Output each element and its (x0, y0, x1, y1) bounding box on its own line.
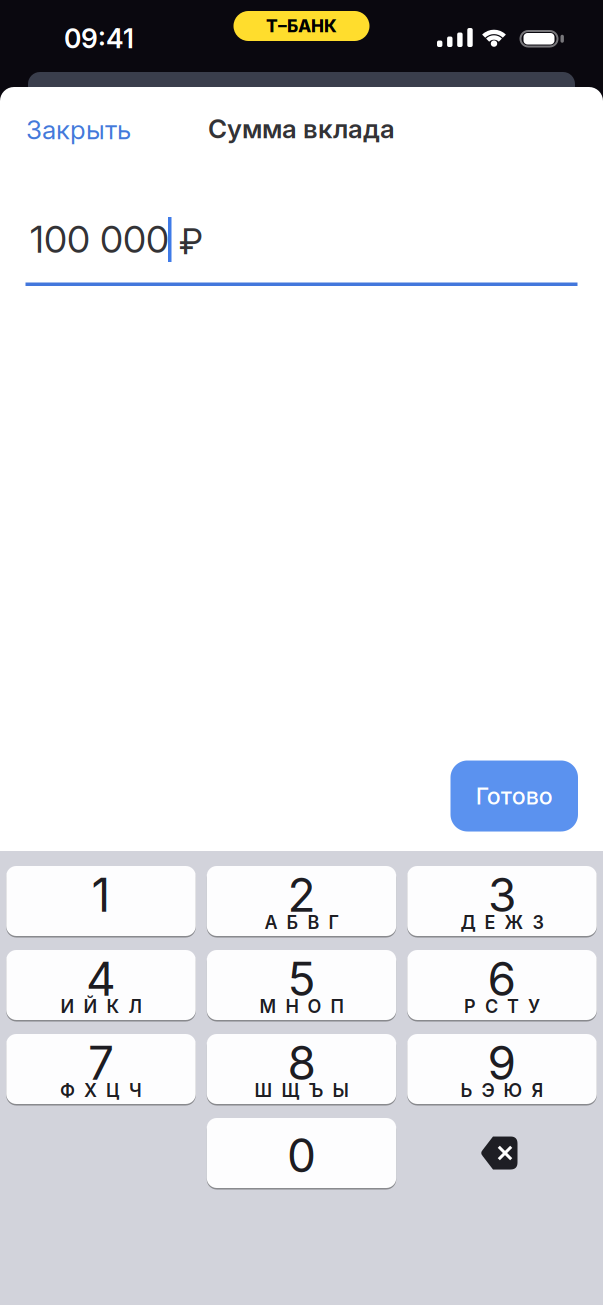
button[interactable]: 7 (6, 1034, 196, 1104)
staticText: Р С Т У (464, 996, 540, 1017)
staticText: Ш Щ Ъ Ы (254, 1080, 348, 1101)
staticText: И Й К Л (60, 996, 141, 1017)
button[interactable]: 5 (207, 950, 396, 1020)
staticText: Готово (476, 782, 553, 810)
staticText: Сумма вклада (208, 113, 395, 144)
button[interactable]: 6 (407, 950, 597, 1020)
button[interactable]: 8 (207, 1034, 396, 1104)
staticText: А Б В Г (264, 912, 338, 933)
button[interactable]: 9 (407, 1034, 597, 1104)
staticText: 5 (287, 951, 315, 1007)
staticText: 6 (487, 951, 516, 1007)
staticText: 7 (88, 1035, 114, 1091)
staticText: 9 (487, 1035, 516, 1091)
staticText: 4 (86, 951, 116, 1007)
button[interactable]: 2 (207, 866, 396, 936)
button[interactable]: 4 (6, 950, 196, 1020)
staticText: Д Е Ж З (460, 912, 543, 933)
button[interactable]: 1 (6, 866, 196, 936)
button[interactable]: Удалить (407, 1118, 597, 1188)
button[interactable]: 0 (207, 1118, 396, 1188)
staticText: 1 (91, 867, 110, 923)
staticText: М Н О П (259, 996, 343, 1017)
button[interactable]: Закрыть (26, 114, 131, 145)
staticText: Закрыть (26, 114, 131, 145)
button[interactable]: 3 (407, 866, 597, 936)
staticText: 3 (488, 867, 516, 923)
staticText: 8 (287, 1035, 315, 1091)
staticText: 09:41 (64, 22, 134, 55)
staticText: 0 (287, 1128, 316, 1183)
staticText: Т–БАНК (266, 15, 337, 36)
staticText: Ф Х Ц Ч (60, 1080, 142, 1101)
staticText: 2 (287, 867, 315, 923)
staticText: 100 000 (30, 216, 169, 262)
staticText: Ь Э Ю Я (460, 1080, 543, 1101)
button[interactable]: Готово (450, 760, 578, 831)
staticText: ₽ (179, 220, 203, 263)
